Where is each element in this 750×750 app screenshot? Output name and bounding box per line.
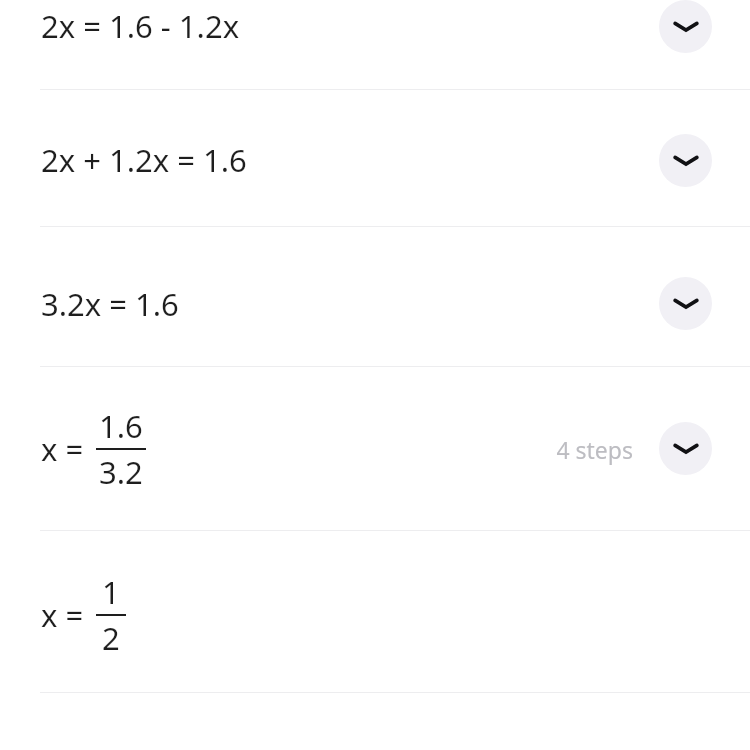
staticText: 3.2 xyxy=(99,451,143,493)
staticText: 2x = 1.6 - 1.2x xyxy=(41,5,240,47)
button[interactable]: x = xyxy=(0,367,750,530)
staticText: 2 xyxy=(102,617,120,659)
button[interactable]: 2x + 1.2x = 1.6 xyxy=(0,90,750,226)
button[interactable]: x = xyxy=(0,531,750,692)
staticText: x = xyxy=(41,594,84,636)
button[interactable]: Expand step xyxy=(659,0,712,53)
staticText: 2x + 1.2x = 1.6 xyxy=(41,139,247,181)
button[interactable]: 2x = 1.6 - 1.2x xyxy=(0,0,750,89)
staticText: 1 xyxy=(102,571,120,613)
staticText: 1.6 xyxy=(99,405,143,447)
button[interactable]: Expand step xyxy=(659,134,712,187)
button[interactable]: Expand step xyxy=(659,277,712,330)
button[interactable]: 3.2x = 1.6 xyxy=(0,227,750,366)
staticText: 4 steps xyxy=(556,434,633,465)
button[interactable]: Expand step xyxy=(659,422,712,475)
staticText: 3.2x = 1.6 xyxy=(41,283,179,325)
staticText: x = xyxy=(41,428,84,470)
